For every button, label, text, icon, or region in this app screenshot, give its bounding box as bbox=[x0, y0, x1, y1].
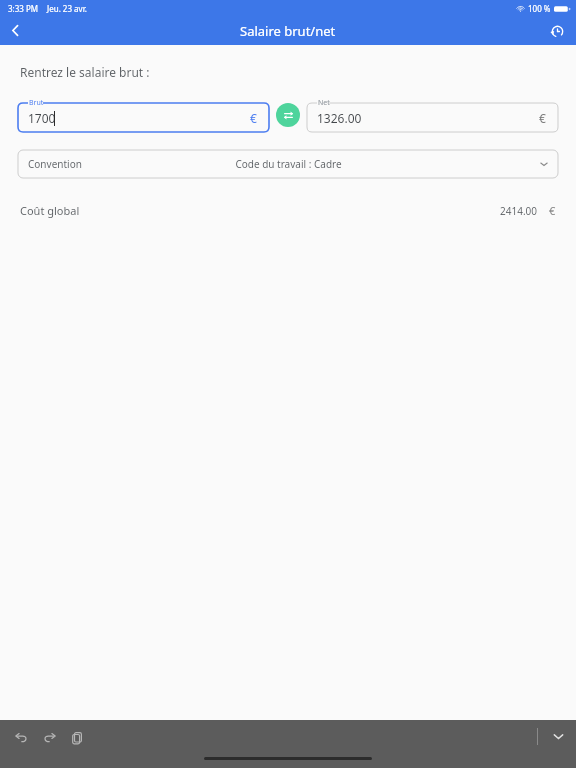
staticText: 1700 bbox=[28, 110, 56, 126]
button[interactable]: Back bbox=[0, 16, 30, 45]
button[interactable]: Convention bbox=[18, 150, 558, 178]
staticText: Convention bbox=[28, 157, 82, 171]
staticText: Net bbox=[318, 98, 330, 108]
staticText: 1326.00 bbox=[317, 110, 362, 126]
staticText: € bbox=[539, 110, 546, 126]
staticText: Jeu. 23 avr. bbox=[47, 3, 87, 14]
button[interactable]: Hide keyboard bbox=[548, 726, 568, 746]
button[interactable]: Brut bbox=[18, 98, 269, 132]
staticText: 3:33 PM bbox=[8, 3, 39, 14]
staticText: Salaire brut/net bbox=[240, 22, 336, 40]
staticText: € bbox=[250, 110, 257, 126]
staticText: 100 % bbox=[528, 3, 551, 14]
staticText: Code du travail : Cadre bbox=[235, 157, 342, 171]
button[interactable]: Clipboard bbox=[66, 726, 88, 748]
button[interactable]: Redo bbox=[38, 726, 60, 748]
button[interactable]: Swap brut and net bbox=[276, 103, 300, 127]
button[interactable]: Undo bbox=[10, 726, 32, 748]
staticText: € bbox=[549, 203, 556, 218]
staticText: Rentrez le salaire brut : bbox=[20, 64, 150, 80]
staticText: 2414.00 bbox=[500, 204, 537, 218]
staticText: Coût global bbox=[20, 203, 80, 218]
button[interactable]: Net bbox=[307, 98, 558, 132]
button[interactable]: History bbox=[544, 18, 570, 44]
staticText: Brut bbox=[29, 98, 44, 108]
